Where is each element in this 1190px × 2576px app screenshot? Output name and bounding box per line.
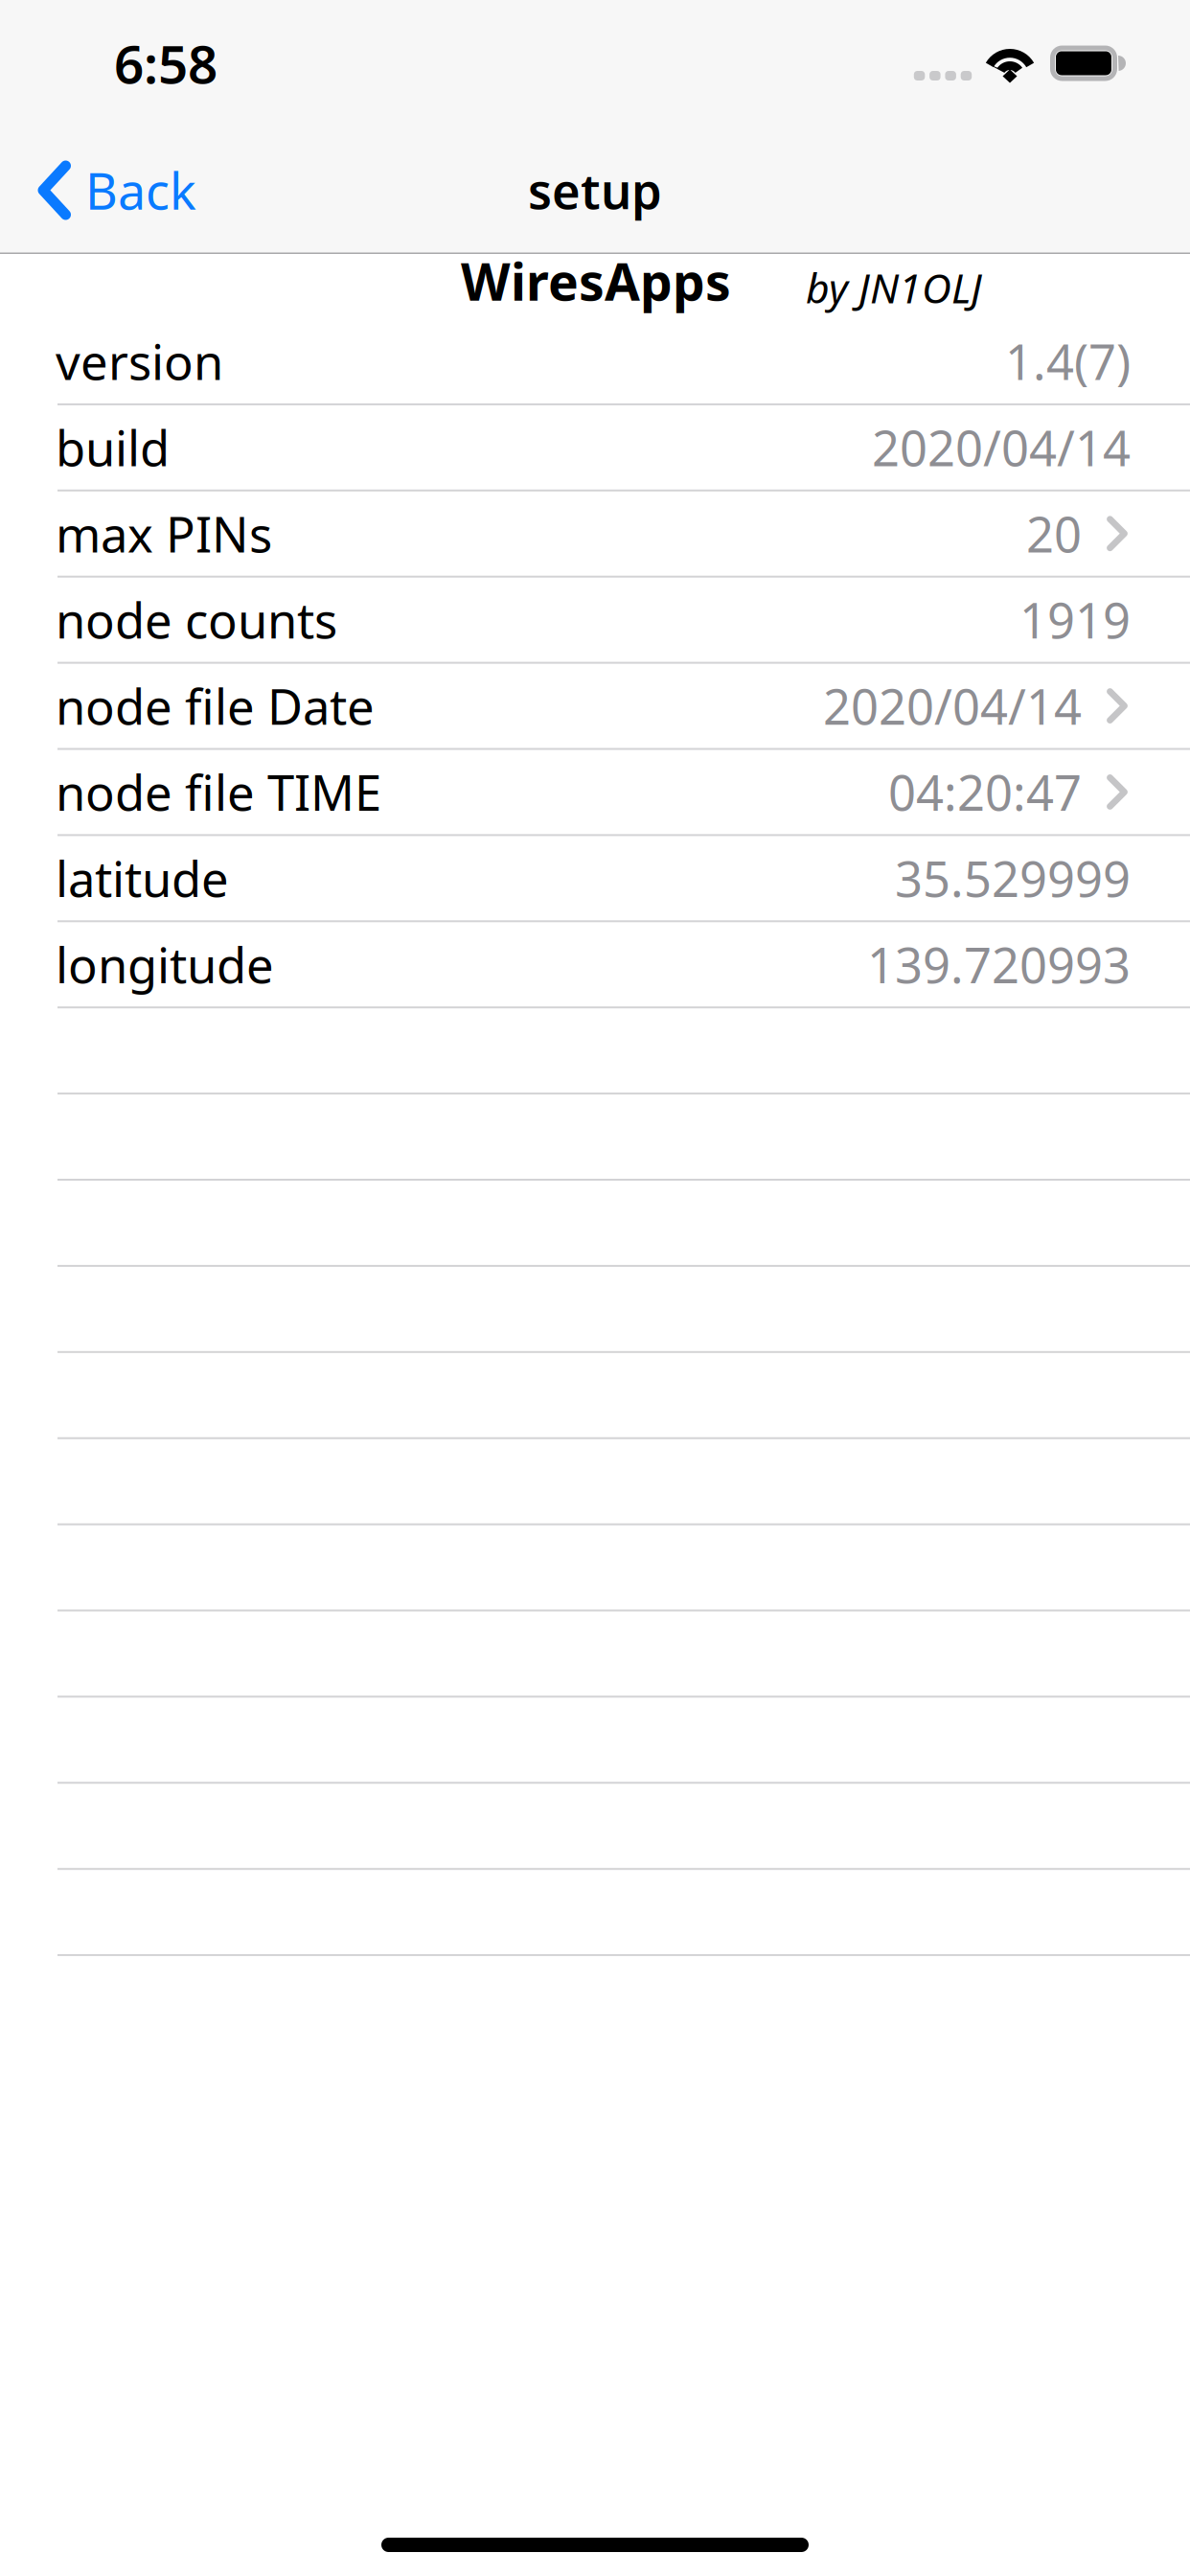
staticText: WiresApps bbox=[461, 247, 731, 315]
staticText: latitude bbox=[56, 846, 229, 910]
staticText: build bbox=[56, 415, 170, 480]
staticText: 04:20:47 bbox=[888, 760, 1082, 824]
staticText: Back bbox=[85, 157, 196, 223]
staticText: 2020/04/14 bbox=[823, 674, 1082, 738]
button[interactable]: version bbox=[0, 319, 1190, 405]
staticText: 20 bbox=[1026, 501, 1082, 566]
button[interactable]: node file Date bbox=[0, 664, 1190, 750]
button[interactable]: longitude bbox=[0, 922, 1190, 1008]
staticText: version bbox=[56, 329, 223, 393]
staticText: setup bbox=[528, 158, 662, 223]
staticText: 1.4(7) bbox=[1005, 329, 1131, 393]
staticText: node file Date bbox=[56, 674, 375, 738]
button[interactable]: node file TIME bbox=[0, 750, 1190, 836]
button[interactable]: Back bbox=[0, 129, 219, 252]
button[interactable]: node counts bbox=[0, 578, 1190, 664]
staticText: max PINs bbox=[56, 501, 272, 566]
button[interactable]: build bbox=[0, 405, 1190, 491]
staticText: 139.720993 bbox=[867, 932, 1131, 997]
button[interactable]: latitude bbox=[0, 836, 1190, 922]
staticText: 2020/04/14 bbox=[872, 415, 1131, 480]
staticText: node counts bbox=[56, 587, 337, 652]
staticText: 1919 bbox=[1019, 587, 1131, 652]
staticText: by JN1OLJ bbox=[806, 260, 982, 315]
staticText: longitude bbox=[56, 932, 274, 997]
staticText: 6:58 bbox=[114, 28, 217, 98]
staticText: node file TIME bbox=[56, 760, 381, 824]
staticText: 35.529999 bbox=[895, 846, 1131, 910]
button[interactable]: max PINs bbox=[0, 491, 1190, 578]
